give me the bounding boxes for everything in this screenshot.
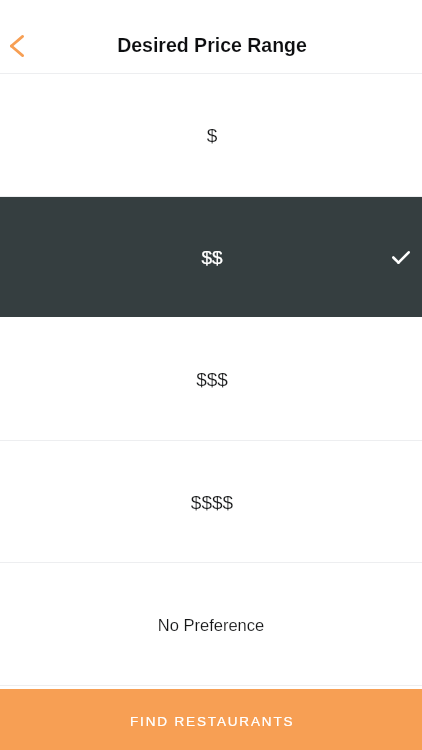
button[interactable]: $$$ — [0, 317, 422, 441]
button[interactable]: FIND RESTAURANTS — [0, 689, 422, 750]
staticText: $$$ — [1, 369, 422, 390]
button[interactable]: $$ — [0, 197, 422, 317]
staticText: Desired Price Range — [1, 34, 422, 56]
staticText: FIND RESTAURANTS — [130, 714, 295, 729]
button[interactable]: No Preference — [0, 563, 422, 686]
staticText: $$$$ — [1, 492, 422, 513]
button[interactable]: $$$$ — [0, 441, 422, 563]
staticText: $$ — [1, 247, 422, 268]
button[interactable]: $ — [0, 74, 422, 197]
button[interactable]: Back — [0, 23, 32, 69]
staticText: No Preference — [0, 616, 422, 634]
staticText: $ — [1, 125, 422, 146]
